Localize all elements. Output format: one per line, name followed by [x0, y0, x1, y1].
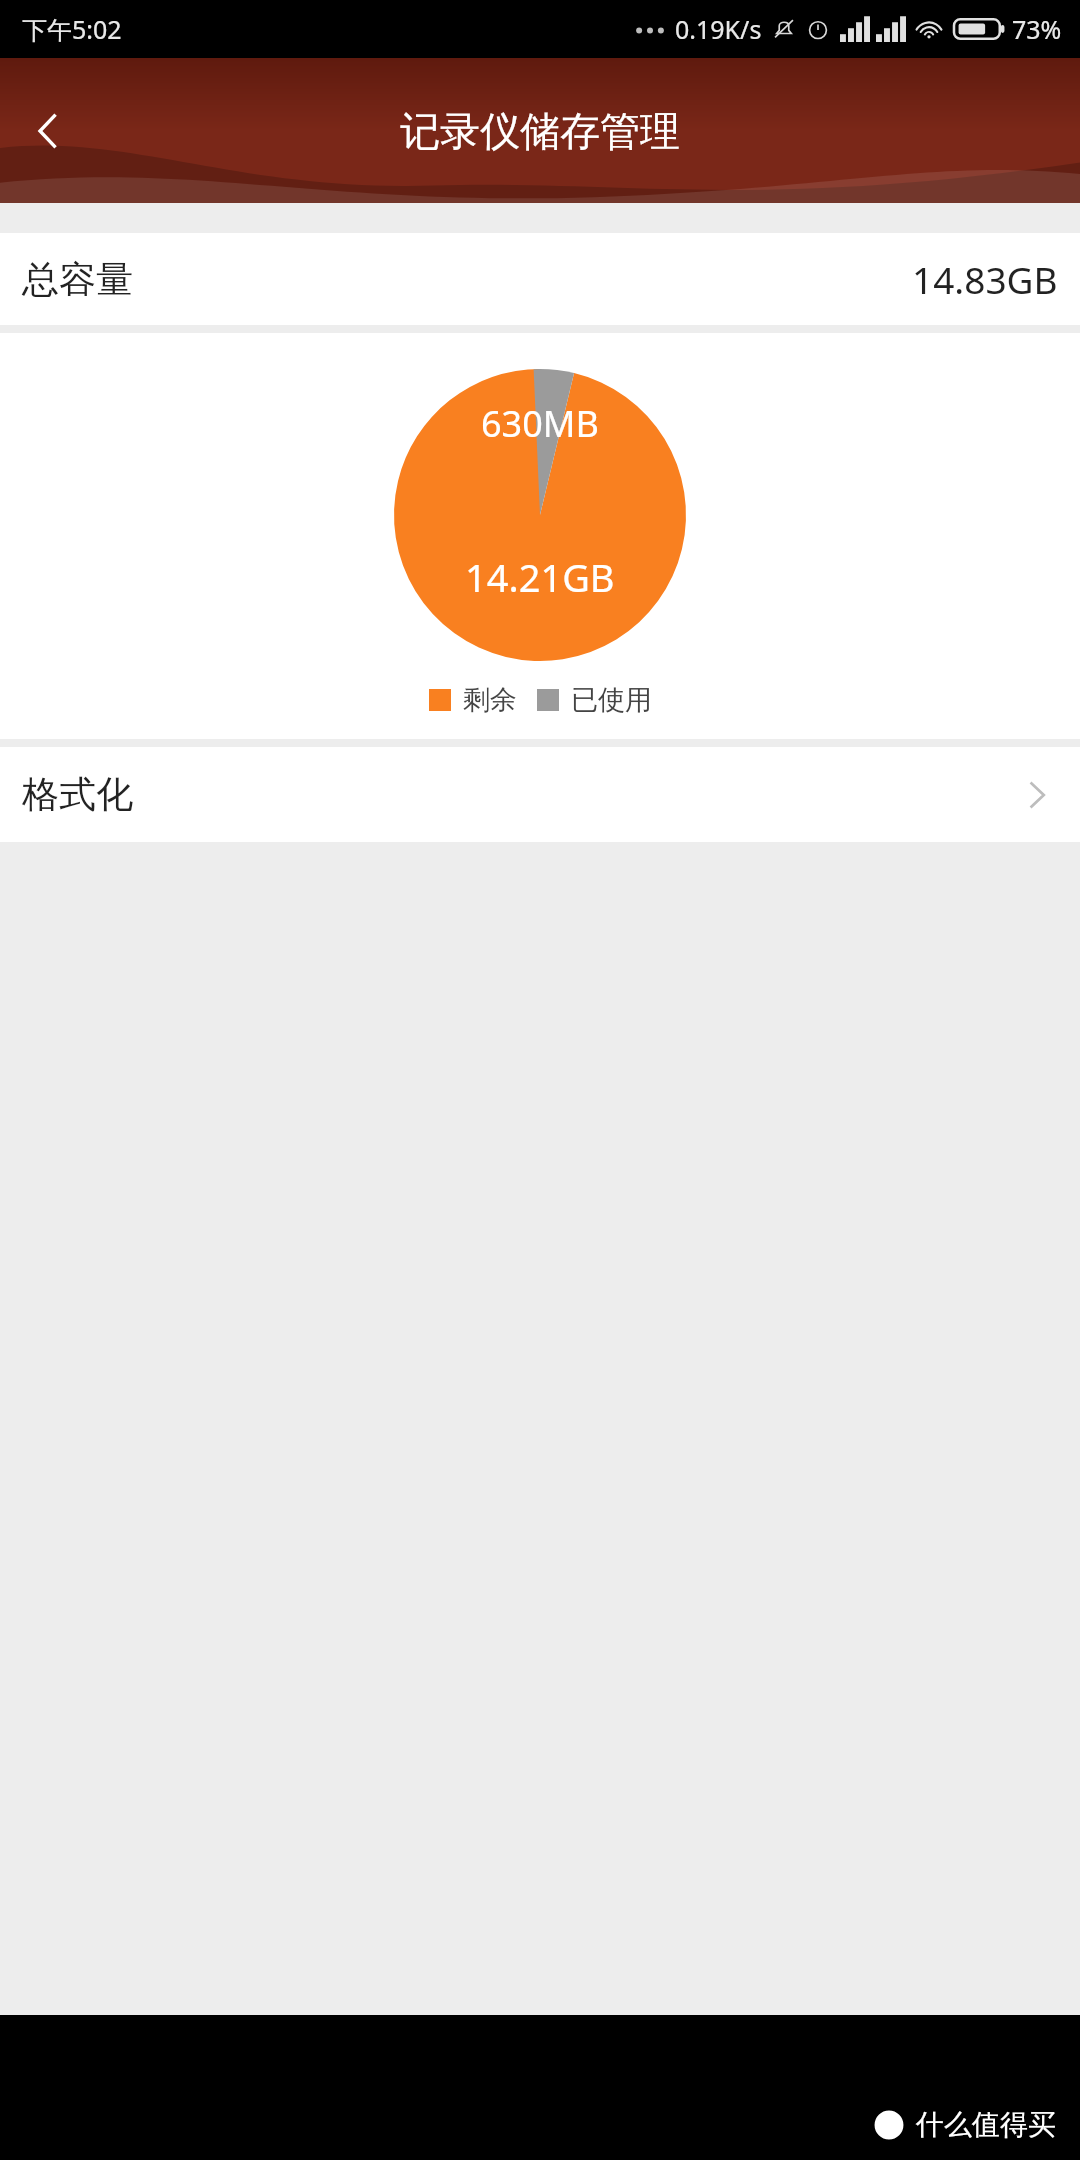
staticText: 总容量	[22, 256, 133, 303]
button[interactable]: 格式化	[0, 747, 1080, 842]
staticText: 什么值得买	[916, 2107, 1056, 2142]
staticText: 剩余	[463, 683, 517, 717]
staticText: 记录仪储存管理	[400, 106, 680, 156]
staticText: 已使用	[571, 683, 652, 717]
staticText: 14.21GB	[465, 551, 615, 603]
staticText: 630MB	[481, 399, 599, 448]
button[interactable]: Back	[6, 89, 90, 173]
staticText: 0.19K/s	[675, 12, 762, 46]
staticText: 格式化	[22, 771, 133, 818]
staticText: 73%	[1012, 12, 1062, 46]
staticText: 14.83GB	[912, 254, 1058, 304]
staticText: 下午5:02	[22, 12, 122, 46]
button[interactable]: 总容量	[0, 233, 1080, 325]
